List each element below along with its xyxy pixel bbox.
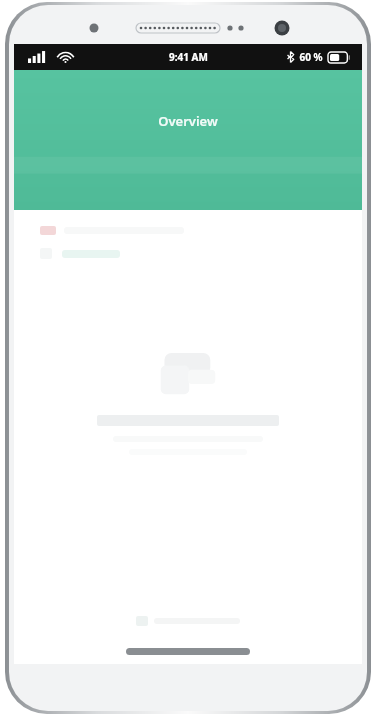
staticText: 9:41 AM [169,50,208,64]
staticText: 60 % [299,50,323,64]
button[interactable]: Home [126,648,250,655]
button[interactable]: Primary action [22,212,354,606]
staticText: Overview [158,112,218,130]
